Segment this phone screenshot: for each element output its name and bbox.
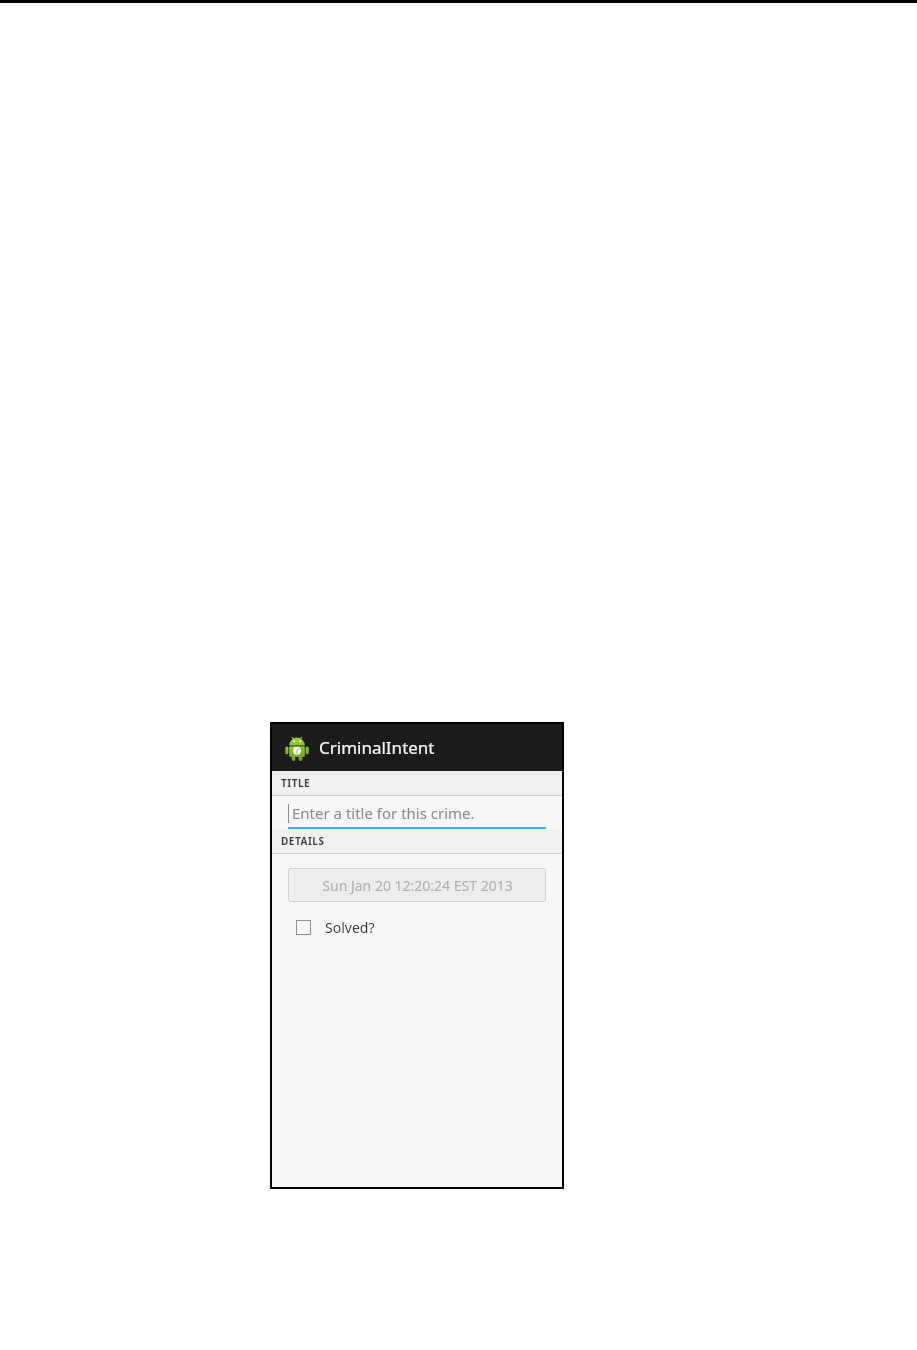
staticText: Sun Jan 20 12:20:24 EST 2013 bbox=[322, 876, 513, 895]
other: App icon bbox=[284, 735, 310, 761]
staticText: Enter a title for this crime. bbox=[292, 803, 475, 823]
staticText: TITLE bbox=[281, 776, 311, 790]
button[interactable]: Sun Jan 20 12:20:24 EST 2013 bbox=[288, 868, 546, 902]
staticText: Solved? bbox=[325, 918, 375, 937]
button[interactable]: App icon bbox=[272, 724, 562, 771]
staticText: CriminalIntent bbox=[319, 736, 435, 759]
button[interactable]: Solved? bbox=[294, 915, 377, 940]
button[interactable]: Enter a title for this crime. bbox=[288, 803, 546, 829]
staticText: DETAILS bbox=[281, 834, 325, 848]
